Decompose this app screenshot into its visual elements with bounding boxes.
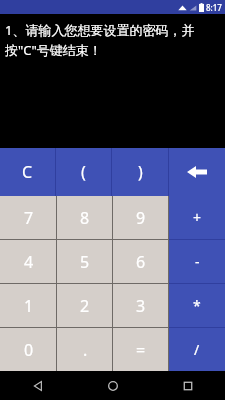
staticText: 4 — [24, 251, 34, 273]
staticText: 7 — [24, 207, 34, 229]
button[interactable]: = — [113, 328, 169, 371]
button[interactable]: + — [169, 196, 225, 239]
button[interactable]: C — [0, 148, 55, 196]
button[interactable]: ( — [56, 148, 111, 196]
staticText: 5 — [80, 251, 90, 273]
button[interactable]: Back — [0, 371, 75, 400]
button[interactable]: 1 — [0, 284, 57, 327]
button[interactable]: 2 — [57, 284, 113, 327]
staticText: / — [194, 340, 200, 359]
button[interactable]: 4 — [0, 240, 57, 283]
staticText: * — [193, 296, 201, 315]
staticText: . — [83, 339, 88, 361]
button[interactable]: 9 — [113, 196, 169, 239]
staticText: C — [22, 161, 33, 183]
staticText: 2 — [80, 295, 90, 317]
button[interactable]: 0 — [0, 328, 57, 371]
button[interactable]: . — [57, 328, 113, 371]
staticText: 8 — [80, 207, 90, 229]
staticText: 9 — [136, 207, 146, 229]
button[interactable]: * — [169, 284, 225, 327]
button[interactable]: / — [169, 328, 225, 371]
button[interactable]: Backspace — [169, 148, 225, 196]
staticText: 1、请输入您想要设置的密码，并按"C"号键结束！ — [5, 21, 220, 59]
button[interactable]: ) — [112, 148, 168, 196]
staticText: 8:17 — [206, 2, 222, 13]
staticText: ) — [138, 161, 143, 183]
staticText: 0 — [24, 339, 34, 361]
staticText: 3 — [136, 295, 146, 317]
button[interactable]: 7 — [0, 196, 57, 239]
staticText: 1 — [24, 295, 34, 317]
staticText: + — [193, 208, 202, 227]
button[interactable]: Home — [75, 371, 150, 400]
button[interactable]: 8 — [57, 196, 113, 239]
button[interactable]: Recents — [150, 371, 225, 400]
staticText: ( — [81, 161, 86, 183]
staticText: - — [195, 252, 200, 271]
staticText: 6 — [136, 251, 146, 273]
button[interactable]: 5 — [57, 240, 113, 283]
button[interactable]: - — [169, 240, 225, 283]
button[interactable]: 3 — [113, 284, 169, 327]
staticText: = — [136, 339, 146, 361]
button[interactable]: 6 — [113, 240, 169, 283]
